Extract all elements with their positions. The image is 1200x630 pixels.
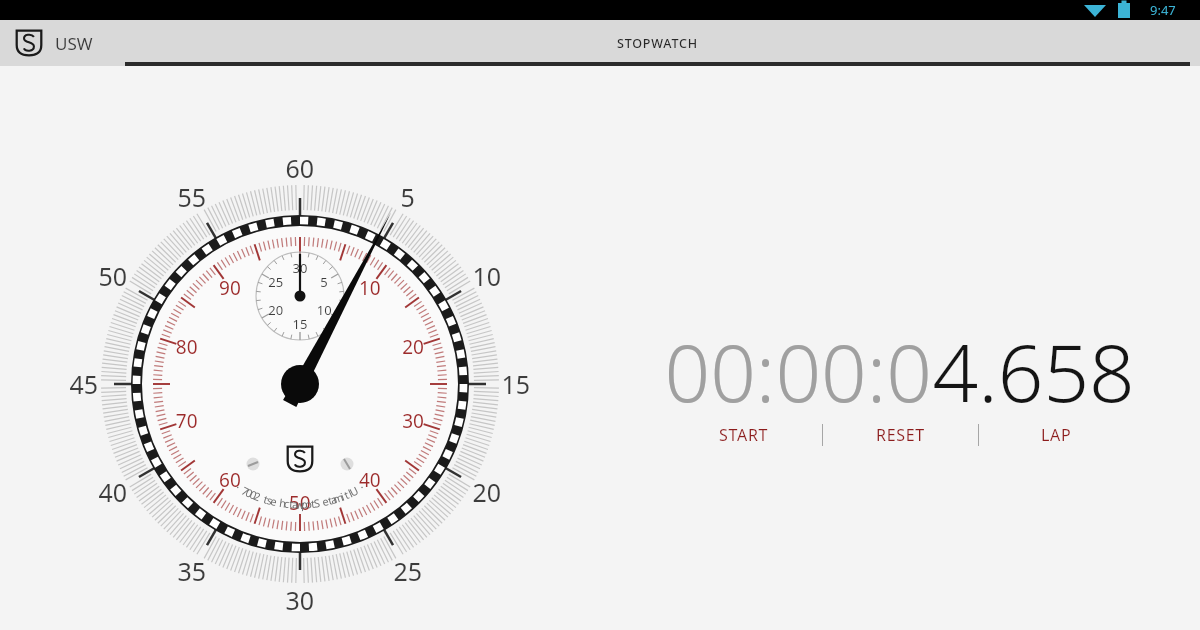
button[interactable]: RESET — [823, 414, 978, 456]
staticText: LAP — [1041, 424, 1072, 446]
staticText: STOPWATCH — [617, 35, 698, 52]
button[interactable]: LAP — [979, 414, 1134, 456]
staticText: START — [719, 424, 769, 446]
button[interactable]: Ultimate Stopwatch — [14, 28, 44, 58]
button[interactable]: STOPWATCH — [115, 20, 1200, 66]
staticText: USW — [55, 32, 93, 55]
staticText: RESET — [876, 424, 925, 446]
button[interactable]: START — [666, 414, 822, 456]
